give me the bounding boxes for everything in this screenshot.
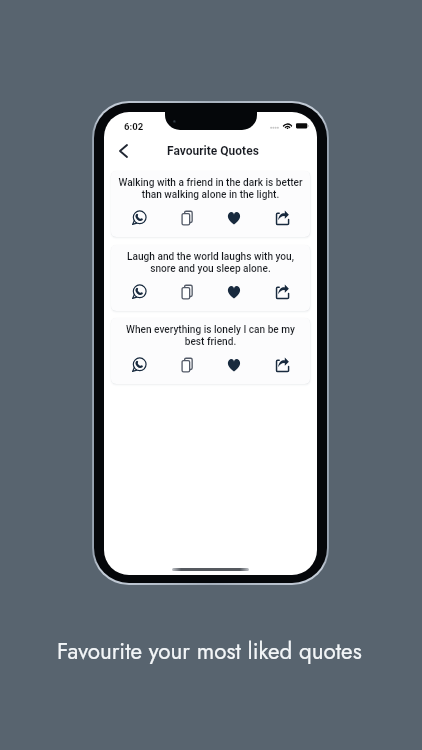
button[interactable]: Walking with a friend in the dark is bet… — [111, 171, 310, 237]
staticText: Favourite Quotes — [167, 144, 259, 158]
button[interactable]: Share — [258, 351, 306, 379]
button[interactable]: Share on WhatsApp — [115, 351, 162, 379]
button[interactable]: Copy — [162, 351, 210, 379]
button[interactable]: Copy — [162, 278, 210, 306]
button[interactable]: When everything is lonely I can be my be… — [111, 318, 310, 384]
staticText: 6:02 — [124, 121, 144, 132]
button[interactable]: Share — [258, 278, 306, 306]
button[interactable]: Copy — [162, 204, 210, 232]
button[interactable]: Favourite — [210, 278, 258, 306]
button[interactable]: Favourite — [210, 351, 258, 379]
button[interactable]: Back — [111, 139, 135, 163]
button[interactable]: Favourite — [210, 204, 258, 232]
staticText: When everything is lonely I can be my be… — [118, 324, 303, 347]
staticText: Walking with a friend in the dark is bet… — [118, 177, 303, 200]
button[interactable]: Share on WhatsApp — [115, 278, 162, 306]
button[interactable]: Laugh and the world laughs with you, sno… — [111, 245, 310, 311]
staticText: Laugh and the world laughs with you, sno… — [118, 251, 303, 274]
button[interactable]: Share on WhatsApp — [115, 204, 162, 232]
button[interactable]: Share — [258, 204, 306, 232]
staticText: Favourite your most liked quotes — [57, 635, 362, 667]
